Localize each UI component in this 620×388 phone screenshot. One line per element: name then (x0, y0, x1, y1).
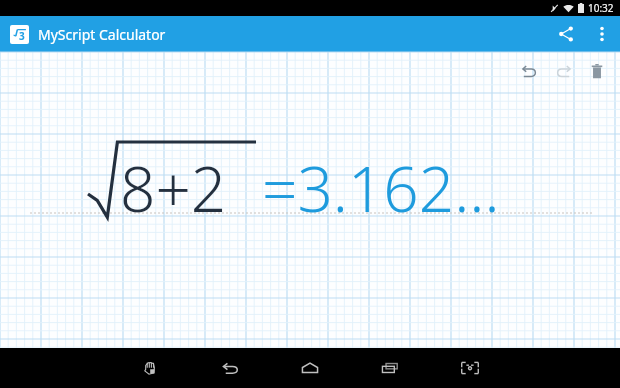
button[interactable]: Unpin screen (126, 348, 174, 388)
button[interactable]: More options (584, 16, 620, 52)
button[interactable]: Recent apps (366, 348, 414, 388)
button[interactable]: Redo (546, 54, 580, 88)
button[interactable]: Home (286, 348, 334, 388)
button[interactable]: Share (548, 16, 584, 52)
button[interactable]: Clear (580, 54, 614, 88)
staticText: =3.162… (262, 146, 500, 230)
staticText: 8+2 (120, 146, 227, 230)
button[interactable]: Back (206, 348, 254, 388)
button[interactable]: Undo (512, 54, 546, 88)
staticText: MyScript Calculator (38, 25, 166, 44)
staticText: 3 (19, 29, 25, 43)
button[interactable]: Screenshot (446, 348, 494, 388)
staticText: 10:32 (588, 1, 614, 15)
